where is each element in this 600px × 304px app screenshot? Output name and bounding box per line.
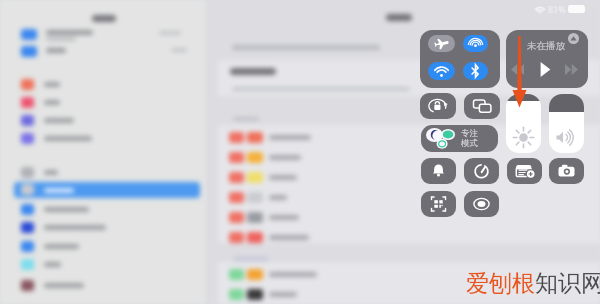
button[interactable]: Bluetooth <box>463 62 488 80</box>
button[interactable]: Cellular data <box>463 35 488 52</box>
button[interactable]: Brightness <box>506 94 541 153</box>
button[interactable]: Notes <box>507 158 542 184</box>
button[interactable]: Silent mode <box>421 158 456 184</box>
button[interactable]: Airplane mode <box>428 35 455 52</box>
staticText: 未在播放 <box>527 40 565 52</box>
staticText: 专注 模式 <box>461 128 478 149</box>
button[interactable]: 专注 模式 <box>421 125 498 152</box>
button[interactable]: Timer <box>464 158 499 184</box>
button[interactable]: Wi-Fi <box>428 62 455 80</box>
button[interactable]: 未在播放 <box>506 30 588 88</box>
button[interactable]: Volume <box>549 94 584 153</box>
button[interactable]: Screen record <box>464 191 499 217</box>
button[interactable]: Rotation lock <box>420 93 456 119</box>
button[interactable]: Code scanner <box>421 191 456 217</box>
button[interactable]: Camera <box>549 158 584 184</box>
staticText: 知识网 <box>535 269 600 298</box>
button[interactable]: Screen mirroring <box>464 93 500 119</box>
staticText: 81% <box>548 3 566 15</box>
staticText: 爱刨根 <box>466 269 535 298</box>
